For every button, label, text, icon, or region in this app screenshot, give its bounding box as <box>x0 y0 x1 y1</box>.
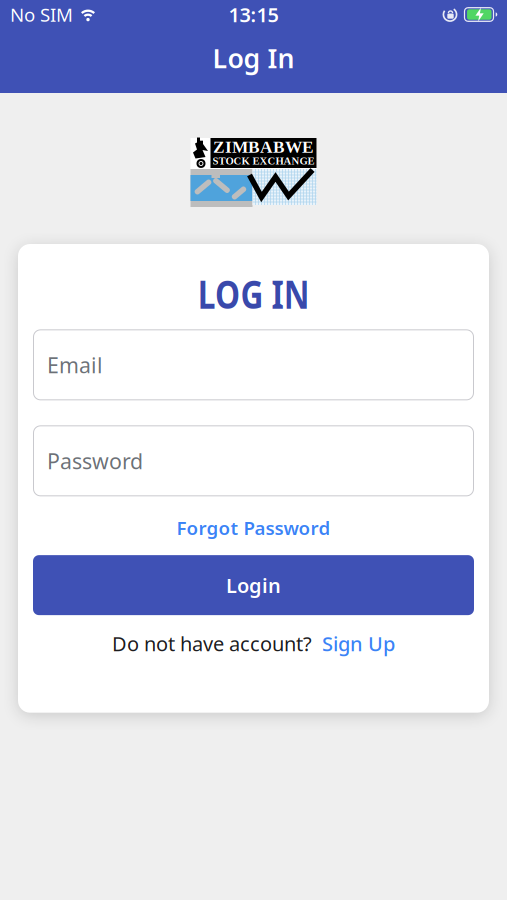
staticText: No SIM <box>10 2 73 27</box>
staticText: Log In <box>212 40 294 76</box>
staticText: Do not have account? <box>112 630 312 657</box>
staticText: ZIMBABWE <box>213 137 314 157</box>
staticText: LOG IN <box>185 268 321 319</box>
button[interactable]: Login <box>33 555 474 615</box>
staticText: Sign Up <box>322 630 395 657</box>
staticText: Forgot Password <box>176 515 330 540</box>
staticText: Password <box>47 447 143 475</box>
button[interactable]: Sign Up <box>322 630 395 657</box>
button[interactable]: Forgot Password <box>176 515 330 540</box>
staticText: 13:15 <box>228 1 278 28</box>
staticText: Login <box>226 572 281 598</box>
button[interactable]: Password <box>33 425 474 496</box>
staticText: Email <box>47 351 103 379</box>
button[interactable]: Email <box>33 329 474 400</box>
staticText: STOCK EXCHANGE <box>212 155 314 167</box>
